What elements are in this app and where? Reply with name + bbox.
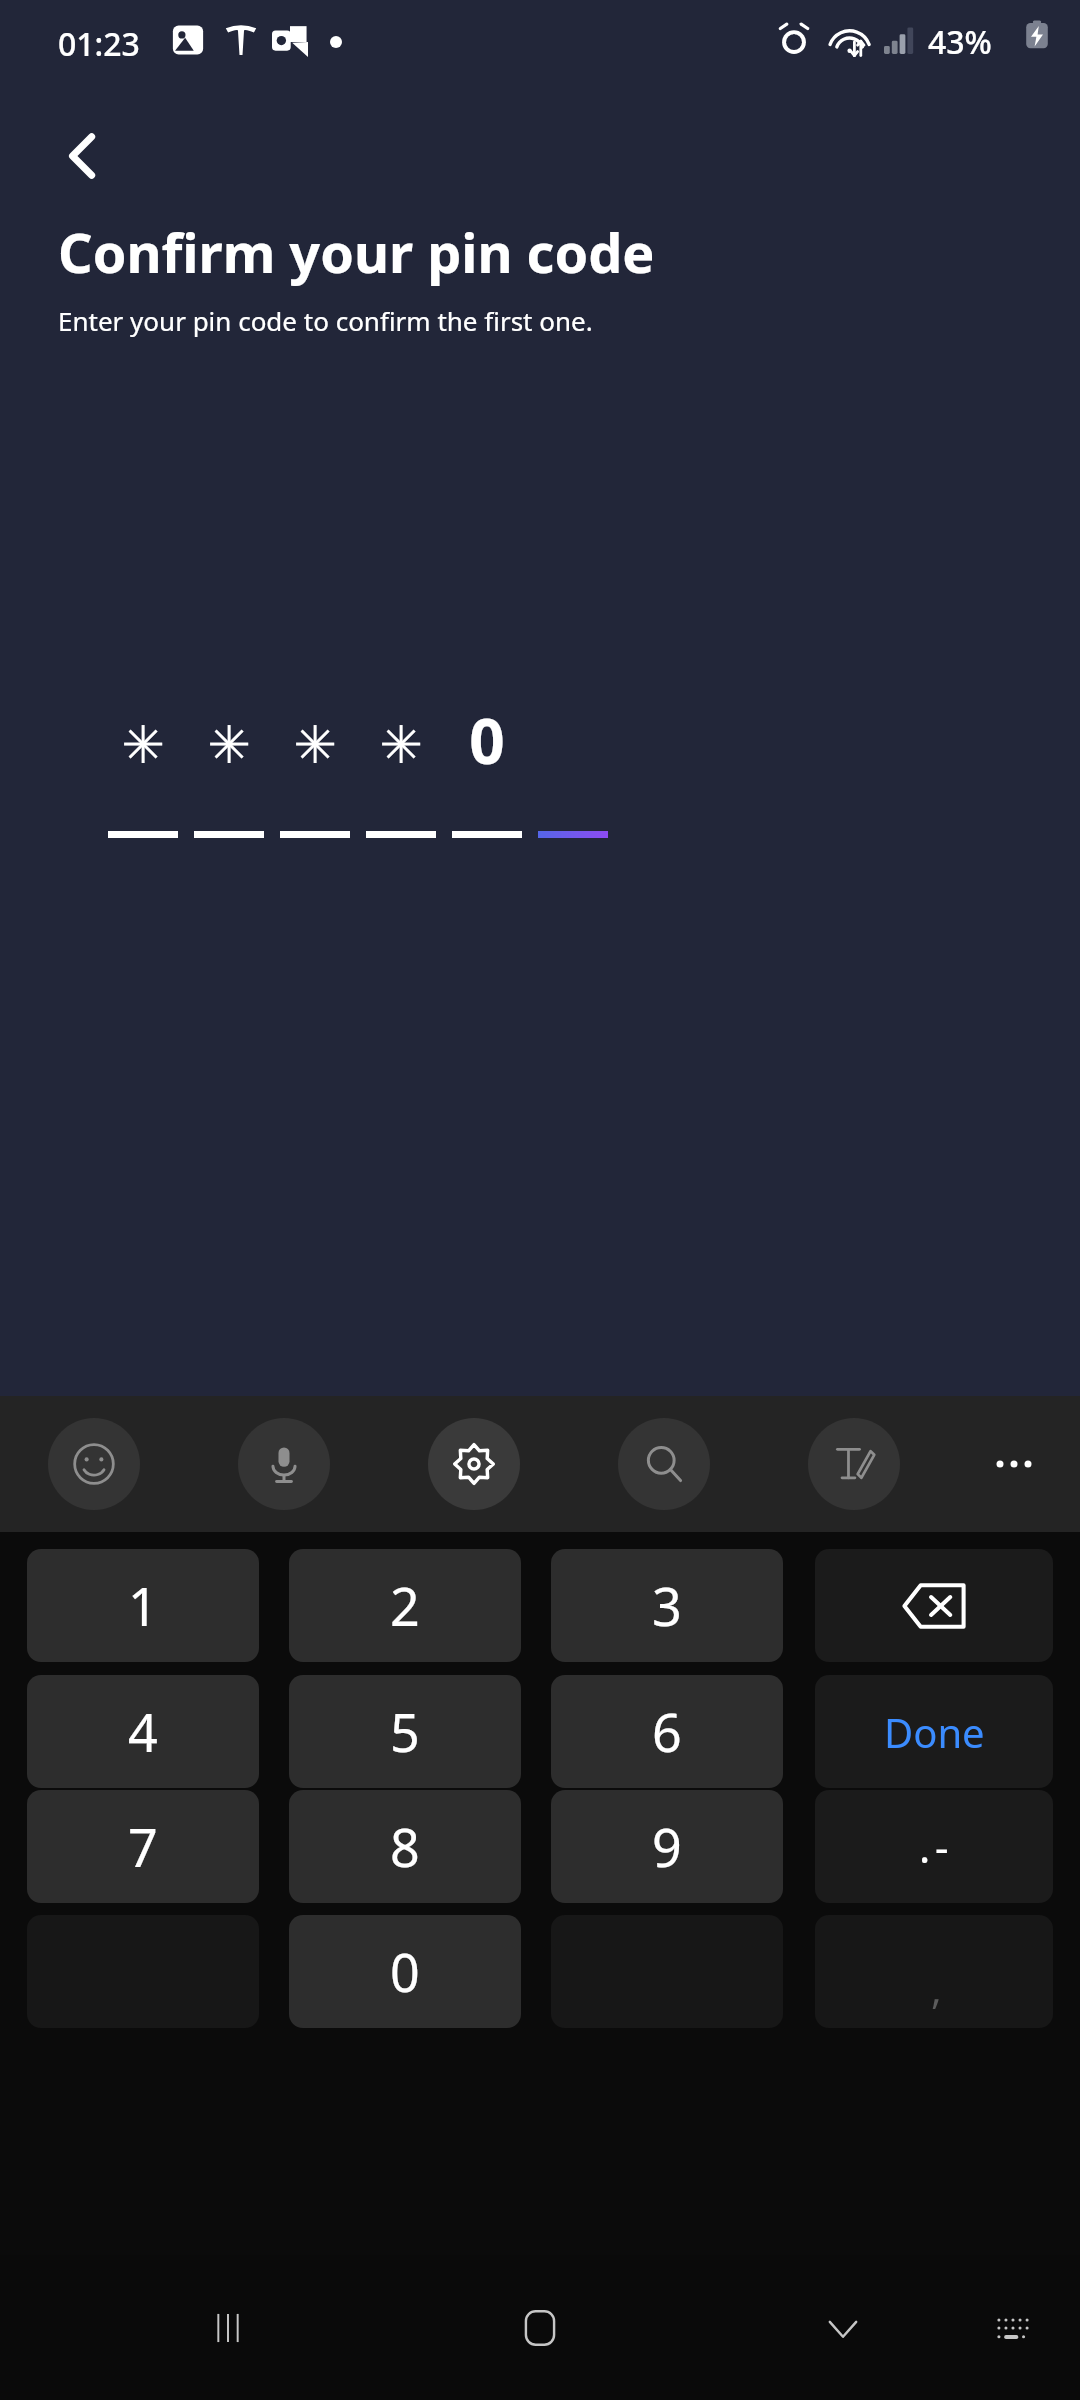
staticText: 0: [390, 1936, 420, 2007]
button[interactable]: Back: [36, 108, 132, 204]
button[interactable]: 5: [289, 1675, 521, 1788]
staticText: 9: [652, 1811, 682, 1882]
button[interactable]: Done: [815, 1675, 1053, 1788]
button[interactable]: 8: [289, 1790, 521, 1903]
staticText: .: [919, 1818, 931, 1875]
staticText: ✳: [379, 715, 423, 776]
button[interactable]: Backspace: [815, 1549, 1053, 1662]
button[interactable]: Recents: [185, 2285, 271, 2371]
staticText: 5: [390, 1696, 420, 1767]
staticText: 0: [469, 698, 505, 782]
staticText: 8: [390, 1811, 420, 1882]
staticText: 2: [390, 1570, 420, 1641]
button[interactable]: 4: [27, 1675, 259, 1788]
button[interactable]: 1: [27, 1549, 259, 1662]
staticText: Confirm your pin code: [58, 215, 655, 289]
button[interactable]: Change keyboard: [970, 2285, 1056, 2371]
button[interactable]: 2: [289, 1549, 521, 1662]
staticText: 3: [652, 1570, 682, 1641]
staticText: Done: [884, 1705, 985, 1759]
staticText: 7: [128, 1811, 158, 1882]
button[interactable]: Settings: [428, 1418, 520, 1510]
staticText: ✳: [293, 715, 337, 776]
staticText: ✳: [207, 715, 251, 776]
staticText: 1: [128, 1570, 158, 1641]
staticText: 4: [128, 1696, 158, 1767]
button[interactable]: Hide keyboard: [800, 2285, 886, 2371]
button[interactable]: More options: [968, 1418, 1060, 1510]
staticText: 6: [652, 1696, 682, 1767]
staticText: 01:23: [58, 22, 140, 66]
button[interactable]: Search: [618, 1418, 710, 1510]
staticText: ,: [931, 1961, 942, 2015]
button[interactable]: 3: [551, 1549, 783, 1662]
staticText: Enter your pin code to confirm the first…: [58, 303, 593, 338]
staticText: ✳: [121, 715, 165, 776]
button[interactable]: 0: [289, 1915, 521, 2028]
button[interactable]: 6: [551, 1675, 783, 1788]
staticText: 43%: [928, 20, 992, 64]
button[interactable]: Voice input: [238, 1418, 330, 1510]
button[interactable]: Emoji: [48, 1418, 140, 1510]
button[interactable]: Home: [497, 2285, 583, 2371]
button[interactable]: 9: [551, 1790, 783, 1903]
staticText: -: [935, 1818, 949, 1875]
button[interactable]: 7: [27, 1790, 259, 1903]
button[interactable]: Handwriting: [808, 1418, 900, 1510]
button[interactable]: .: [815, 1790, 1053, 1903]
